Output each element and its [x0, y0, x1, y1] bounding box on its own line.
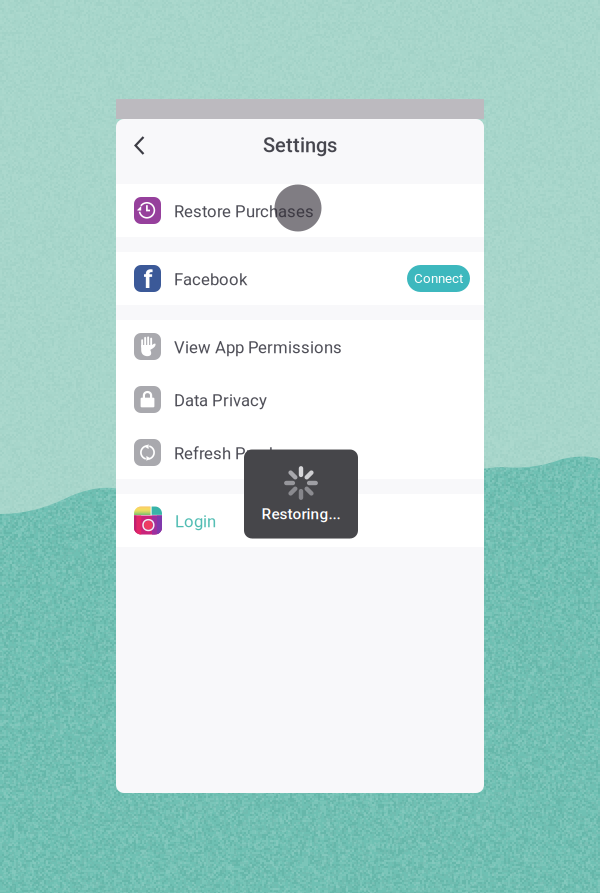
staticText: Restoring...: [261, 505, 340, 523]
button[interactable]: Back: [125, 127, 154, 164]
staticText: Login: [175, 512, 216, 531]
button[interactable]: Connect: [407, 265, 470, 292]
staticText: Facebook: [174, 270, 247, 289]
button[interactable]: Refresh Purchases: [116, 426, 484, 479]
staticText: Restore Purchases: [174, 202, 314, 221]
staticText: Refresh Purchases: [174, 444, 314, 463]
button[interactable]: View App Permissions: [116, 320, 484, 373]
staticText: Connect: [414, 271, 463, 286]
button[interactable]: Data Privacy: [116, 373, 484, 426]
staticText: Settings: [263, 134, 337, 157]
staticText: f: [143, 265, 152, 294]
staticText: Data Privacy: [174, 391, 267, 410]
staticText: View App Permissions: [174, 338, 342, 357]
button[interactable]: f: [116, 252, 484, 305]
button[interactable]: Restore Purchases: [116, 184, 484, 237]
button[interactable]: Login: [116, 494, 484, 547]
